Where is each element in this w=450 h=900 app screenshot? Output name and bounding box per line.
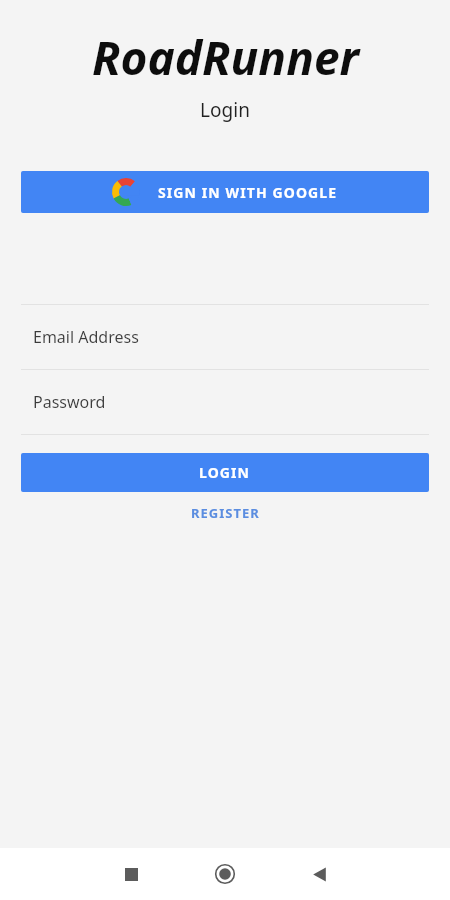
staticText: Email Address [33,326,139,348]
button[interactable]: Recent apps [84,848,178,900]
button[interactable]: LOGIN [21,453,429,492]
button[interactable]: Email Address [0,305,450,369]
button[interactable]: Back [272,848,366,900]
staticText: REGISTER [191,504,260,522]
staticText: SIGN IN WITH GOOGLE [158,183,338,202]
button[interactable]: SIGN IN WITH GOOGLE [21,171,429,213]
staticText: LOGIN [199,463,251,482]
button[interactable]: Password [0,370,450,434]
button[interactable]: Home [178,848,272,900]
staticText: RoadRunner [92,26,359,89]
button[interactable]: REGISTER [179,500,272,526]
staticText: Password [33,391,106,413]
staticText: Login [200,97,250,123]
